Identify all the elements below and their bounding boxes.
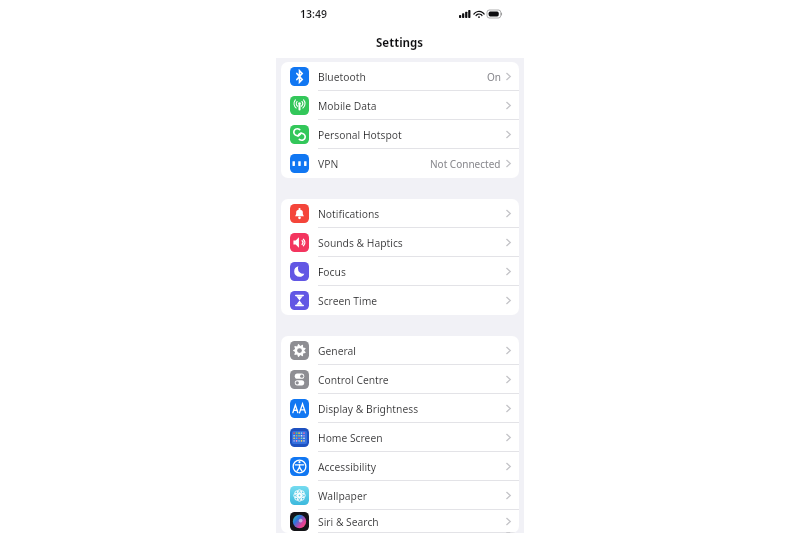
other: Home Screen [290, 428, 309, 447]
staticText: Not Connected [430, 157, 501, 171]
other: General [290, 341, 309, 360]
button[interactable]: Notifications [281, 199, 519, 228]
staticText: Mobile Data [318, 99, 506, 113]
button[interactable]: VPN [281, 149, 519, 178]
button[interactable]: General [281, 336, 519, 365]
button[interactable]: Sounds & Haptics [281, 228, 519, 257]
staticText: Wallpaper [318, 489, 506, 503]
button[interactable]: Personal Hotspot [281, 120, 519, 149]
staticText: On [487, 70, 501, 84]
other: Personal Hotspot [290, 125, 309, 144]
staticText: Siri & Search [318, 515, 506, 529]
other: Bluetooth [290, 67, 309, 86]
staticText: Control Centre [318, 373, 506, 387]
staticText: General [318, 344, 506, 358]
other: Control Centre [290, 370, 309, 389]
staticText: Settings [376, 35, 424, 51]
staticText: VPN [318, 157, 430, 171]
other: Wallpaper [290, 486, 309, 505]
button[interactable]: Display & Brightness [281, 394, 519, 423]
other: Sounds & Haptics [290, 233, 309, 252]
staticText: Sounds & Haptics [318, 236, 506, 250]
button[interactable]: Home Screen [281, 423, 519, 452]
other: Screen Time [290, 291, 309, 310]
other: Accessibility [290, 457, 309, 476]
other: Mobile Data [290, 96, 309, 115]
button[interactable]: Siri & Search [281, 510, 519, 533]
staticText: Accessibility [318, 460, 506, 474]
staticText: Personal Hotspot [318, 128, 506, 142]
button[interactable]: Accessibility [281, 452, 519, 481]
button[interactable]: Focus [281, 257, 519, 286]
button[interactable]: Wallpaper [281, 481, 519, 510]
button[interactable]: Screen Time [281, 286, 519, 315]
staticText: Bluetooth [318, 70, 487, 84]
button[interactable]: Bluetooth [281, 62, 519, 91]
other: Notifications [290, 204, 309, 223]
other: VPN [290, 154, 309, 173]
staticText: Display & Brightness [318, 402, 506, 416]
staticText: 13:49 [300, 7, 327, 21]
staticText: Focus [318, 265, 506, 279]
other: Focus [290, 262, 309, 281]
staticText: Screen Time [318, 294, 506, 308]
staticText: Notifications [318, 207, 506, 221]
staticText: Home Screen [318, 431, 506, 445]
other: Siri & Search [290, 512, 309, 531]
button[interactable]: Mobile Data [281, 91, 519, 120]
button[interactable]: Control Centre [281, 365, 519, 394]
other: Display & Brightness [290, 399, 309, 418]
